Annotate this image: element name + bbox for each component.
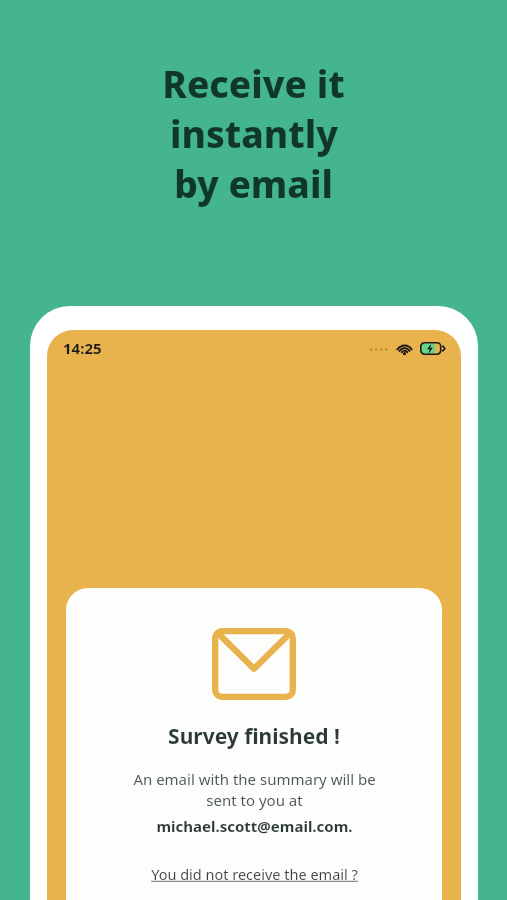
staticText: instantly: [170, 108, 338, 158]
staticText: Receive it: [162, 58, 345, 108]
button[interactable]: You did not receive the email ?: [141, 860, 368, 888]
staticText: by email: [174, 158, 333, 208]
staticText: 14:25: [63, 338, 102, 358]
staticText: michael.scott@email.com.: [156, 816, 353, 836]
other: Signal strength: [369, 342, 389, 354]
other: Battery charging: [420, 342, 445, 355]
staticText: Survey finished !: [168, 722, 340, 751]
other: Wi-Fi: [396, 341, 413, 355]
staticText: You did not receive the email ?: [151, 864, 358, 884]
staticText: An email with the summary will be sent t…: [133, 769, 376, 811]
